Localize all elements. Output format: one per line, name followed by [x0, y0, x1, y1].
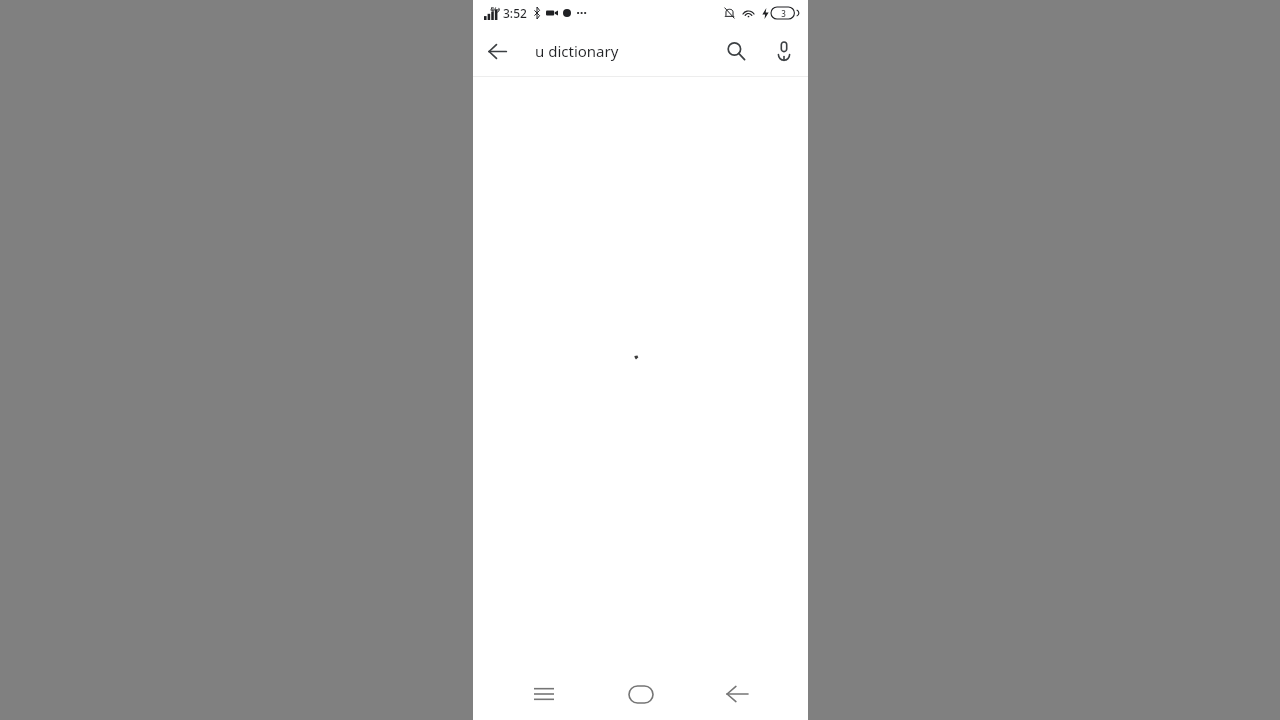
- button[interactable]: Back: [711, 668, 763, 720]
- button[interactable]: Home: [615, 668, 667, 720]
- button[interactable]: u dictionary: [521, 26, 712, 76]
- button[interactable]: Recent apps: [518, 668, 570, 720]
- button[interactable]: Voice search: [760, 27, 808, 75]
- staticText: 3: [781, 8, 786, 19]
- staticText: u dictionary: [535, 41, 619, 61]
- button[interactable]: Search: [712, 27, 760, 75]
- staticText: 3:52: [503, 5, 527, 21]
- button[interactable]: Back: [473, 27, 521, 75]
